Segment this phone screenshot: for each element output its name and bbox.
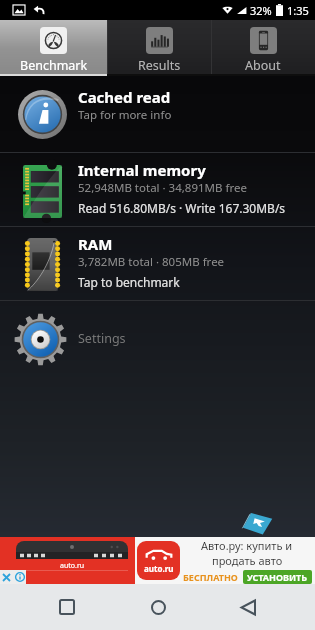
staticText: RAM bbox=[78, 234, 113, 254]
button[interactable]: Home bbox=[135, 584, 181, 630]
staticText: Авто.ру: купить и bbox=[201, 538, 293, 553]
staticText: auto.ru bbox=[60, 561, 85, 571]
button[interactable]: Settings bbox=[0, 301, 315, 373]
staticText: 52,948MB total · 34,891MB free bbox=[78, 180, 247, 196]
button[interactable]: RAM bbox=[0, 227, 315, 300]
button[interactable]: About bbox=[211, 20, 315, 76]
staticText: Read 516.80MB/s · Write 167.30MB/s bbox=[78, 200, 286, 216]
staticText: 3,782MB total · 805MB free bbox=[78, 254, 225, 270]
staticText: About bbox=[245, 57, 281, 74]
staticText: УСТАНОВИТЬ bbox=[247, 571, 308, 583]
button[interactable]: Back bbox=[225, 584, 271, 630]
button[interactable]: auto.ru bbox=[0, 537, 315, 584]
staticText: Internal memory bbox=[78, 160, 206, 180]
staticText: Tap to benchmark bbox=[78, 274, 180, 290]
staticText: Benchmark bbox=[20, 57, 88, 74]
button[interactable]: Results bbox=[107, 20, 211, 76]
staticText: auto.ru bbox=[144, 563, 174, 574]
staticText: продать авто bbox=[212, 553, 283, 568]
staticText: БЕСПЛАТНО bbox=[183, 571, 238, 583]
staticText: Cached read bbox=[78, 87, 171, 107]
staticText: 1:35 bbox=[287, 3, 309, 18]
staticText: Settings bbox=[78, 330, 126, 347]
button[interactable]: Ad info bbox=[13, 570, 26, 584]
staticText: 32% bbox=[250, 3, 272, 18]
staticText: Results bbox=[138, 57, 181, 74]
staticText: Tap for more info bbox=[78, 107, 172, 123]
button[interactable]: Benchmark bbox=[0, 20, 107, 76]
button[interactable]: Internal memory bbox=[0, 153, 315, 226]
button[interactable]: Close ad bbox=[0, 570, 13, 584]
button[interactable]: Cached read bbox=[0, 76, 315, 152]
button[interactable]: Recents bbox=[44, 584, 90, 630]
